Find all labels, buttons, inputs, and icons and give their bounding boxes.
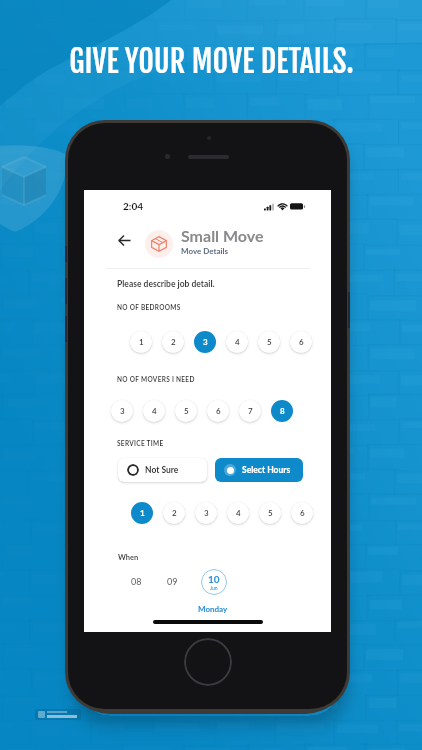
- button[interactable]: Not Sure: [118, 458, 207, 482]
- button[interactable]: 4: [143, 400, 165, 422]
- staticText: NO OF MOVERS I NEED: [117, 376, 195, 384]
- button[interactable]: Select Hours: [215, 458, 303, 482]
- button[interactable]: 8: [271, 400, 293, 422]
- staticText: Move Details: [181, 246, 229, 256]
- button[interactable]: 6: [291, 502, 313, 524]
- button[interactable]: 5: [258, 331, 280, 353]
- staticText: 2: [171, 337, 176, 347]
- button[interactable]: 4: [226, 331, 248, 353]
- staticText: SERVICE TIME: [117, 440, 164, 448]
- button[interactable]: 5: [259, 502, 281, 524]
- staticText: 4: [236, 508, 241, 518]
- button[interactable]: 6: [290, 331, 312, 353]
- staticText: 6: [299, 337, 304, 347]
- staticText: 2: [172, 508, 177, 518]
- staticText: 2:04: [123, 200, 143, 212]
- staticText: 4: [235, 337, 240, 347]
- staticText: NO OF BEDROOMS: [117, 304, 181, 312]
- staticText: 6: [300, 508, 305, 518]
- staticText: Not Sure: [145, 465, 179, 475]
- staticText: Monday: [198, 604, 228, 614]
- button[interactable]: Back: [114, 230, 134, 250]
- staticText: Small Move: [181, 226, 264, 245]
- staticText: When: [118, 553, 139, 562]
- button[interactable]: Get it on Google Play: [35, 709, 81, 720]
- staticText: 7: [248, 406, 253, 416]
- staticText: Please describe job detail.: [117, 279, 215, 289]
- button[interactable]: 1: [131, 502, 153, 524]
- staticText: 08: [131, 576, 142, 587]
- staticText: 5: [184, 406, 189, 416]
- staticText: 4: [152, 406, 157, 416]
- staticText: 5: [268, 508, 273, 518]
- staticText: Jun: [210, 585, 218, 591]
- button[interactable]: 7: [239, 400, 261, 422]
- staticText: 6: [216, 406, 221, 416]
- staticText: 8: [280, 406, 285, 416]
- staticText: 10: [208, 573, 220, 585]
- button[interactable]: 2: [162, 331, 184, 353]
- staticText: GIVE YOUR MOVE DETAILS.: [69, 43, 354, 81]
- button[interactable]: 2: [163, 502, 185, 524]
- staticText: 3: [204, 508, 209, 518]
- button[interactable]: 6: [207, 400, 229, 422]
- staticText: 1: [139, 337, 144, 347]
- button[interactable]: 4: [227, 502, 249, 524]
- staticText: 09: [167, 576, 178, 587]
- button[interactable]: 5: [175, 400, 197, 422]
- button[interactable]: 3: [195, 502, 217, 524]
- button[interactable]: 3: [194, 331, 216, 353]
- staticText: 3: [120, 406, 125, 416]
- button[interactable]: 3: [111, 400, 133, 422]
- button[interactable]: 1: [130, 331, 152, 353]
- button[interactable]: 10: [201, 569, 227, 595]
- staticText: 5: [267, 337, 272, 347]
- staticText: 3: [203, 337, 208, 347]
- staticText: 1: [140, 508, 145, 518]
- staticText: Select Hours: [242, 465, 291, 475]
